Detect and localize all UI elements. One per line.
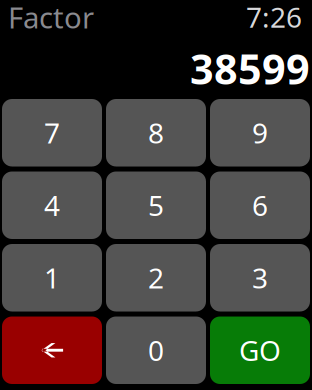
staticText: 9 [252, 114, 268, 151]
staticText: 6 [252, 187, 268, 224]
button[interactable]: 8 [106, 99, 206, 166]
button[interactable]: 4 [2, 171, 102, 239]
staticText: 2 [148, 259, 164, 296]
button[interactable]: 7 [2, 99, 102, 166]
button[interactable]: 9 [210, 99, 310, 166]
staticText: 5 [148, 187, 164, 224]
button[interactable]: GO [210, 316, 310, 384]
staticText: 7 [44, 114, 60, 151]
staticText: 4 [44, 187, 60, 224]
button[interactable]: 5 [106, 171, 206, 239]
button[interactable]: 6 [210, 171, 310, 239]
button[interactable]: 2 [106, 244, 206, 311]
staticText: 8 [148, 114, 164, 151]
button[interactable]: 0 [106, 316, 206, 384]
staticText: 38599 [190, 41, 310, 96]
button[interactable]: Delete [2, 316, 102, 384]
staticText: 3 [252, 259, 268, 296]
button[interactable]: 1 [2, 244, 102, 311]
staticText: 1 [44, 259, 60, 296]
button[interactable]: 3 [210, 244, 310, 311]
staticText: GO [239, 332, 281, 369]
staticText: 0 [148, 332, 164, 369]
staticText: 7:26 [246, 0, 302, 36]
staticText: Factor [8, 0, 94, 36]
